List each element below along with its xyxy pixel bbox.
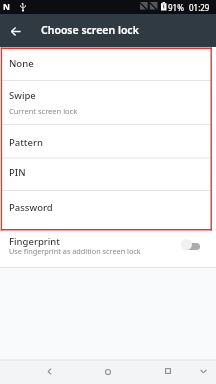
staticText: PIN	[9, 166, 26, 179]
button[interactable]	[178, 236, 204, 254]
button[interactable]	[1, 48, 211, 80]
staticText: Pattern	[9, 136, 43, 149]
button[interactable]	[1, 158, 211, 190]
button[interactable]	[5, 20, 27, 42]
button[interactable]	[38, 360, 60, 382]
staticText: None	[9, 57, 34, 70]
button[interactable]	[192, 360, 214, 382]
staticText: 91%	[168, 2, 184, 13]
button[interactable]	[97, 361, 119, 383]
staticText: N	[3, 1, 10, 13]
staticText: Swipe	[9, 89, 36, 102]
staticText: Use fingerprint as addition screen lock	[9, 246, 141, 256]
staticText: Choose screen lock	[41, 23, 139, 37]
button[interactable]	[0, 229, 216, 267]
button[interactable]	[157, 360, 179, 382]
button[interactable]	[1, 190, 211, 229]
staticText: Fingerprint	[9, 235, 60, 248]
button[interactable]	[1, 124, 211, 158]
staticText: 01:29	[189, 2, 210, 13]
button[interactable]	[1, 80, 211, 124]
staticText: Password	[9, 201, 53, 214]
staticText: Current screen lock	[9, 106, 78, 116]
